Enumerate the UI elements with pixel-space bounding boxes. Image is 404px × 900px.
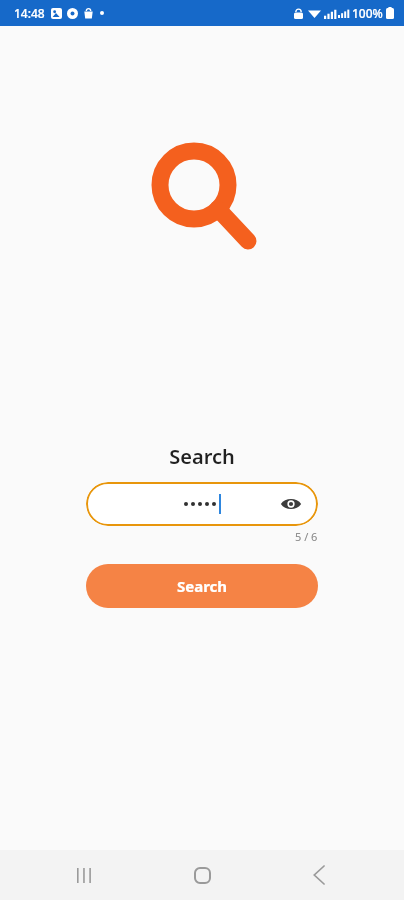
button[interactable]: Back bbox=[287, 850, 351, 900]
button[interactable]: Home bbox=[170, 850, 234, 900]
staticText: Search bbox=[169, 443, 235, 470]
staticText: Search bbox=[177, 576, 228, 596]
staticText: 14:48 bbox=[14, 5, 45, 21]
button[interactable]: Recent apps bbox=[53, 850, 117, 900]
button[interactable]: Show password bbox=[278, 491, 304, 517]
button[interactable]: Show password bbox=[86, 482, 318, 526]
staticText: 100% bbox=[352, 5, 383, 21]
staticText: 5 / 6 bbox=[295, 529, 318, 544]
button[interactable]: Search bbox=[86, 564, 318, 608]
